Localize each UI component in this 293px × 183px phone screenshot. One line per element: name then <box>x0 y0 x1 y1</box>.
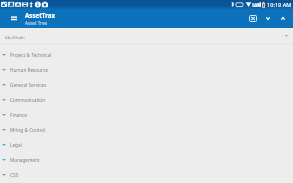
button[interactable]: Human Resource <box>0 62 293 77</box>
staticText: Mrktg & Control <box>10 127 46 133</box>
button[interactable]: Finance <box>0 107 293 122</box>
staticText: Communication <box>10 97 46 103</box>
button[interactable]: Open navigation drawer <box>0 9 25 28</box>
button[interactable]: CSS <box>0 167 293 182</box>
staticText: Human Resource <box>10 67 48 73</box>
button[interactable]: Collapse all nodes <box>245 9 260 28</box>
button[interactable]: Mrktg & Control <box>0 122 293 137</box>
staticText: Legal <box>10 142 22 148</box>
staticText: AssetTrax <box>25 11 56 19</box>
button[interactable]: AbuDhabi <box>0 29 293 43</box>
staticText: Project & Technical <box>10 52 52 58</box>
staticText: 10:19 AM <box>267 1 292 9</box>
staticText: Management <box>10 157 40 163</box>
staticText: AbuDhabi <box>5 35 25 41</box>
staticText: General Services <box>10 82 47 88</box>
button[interactable]: Collapse previous <box>275 9 290 28</box>
staticText: Asset Tree <box>25 20 48 26</box>
button[interactable]: Legal <box>0 137 293 152</box>
staticText: CSS <box>10 172 19 178</box>
button[interactable]: Project & Technical <box>0 47 293 62</box>
button[interactable]: General Services <box>0 77 293 92</box>
button[interactable]: Management <box>0 152 293 167</box>
staticText: 66% <box>252 2 261 8</box>
staticText: Finance <box>10 112 27 118</box>
button[interactable]: Communication <box>0 92 293 107</box>
button[interactable]: Expand next <box>260 9 275 28</box>
